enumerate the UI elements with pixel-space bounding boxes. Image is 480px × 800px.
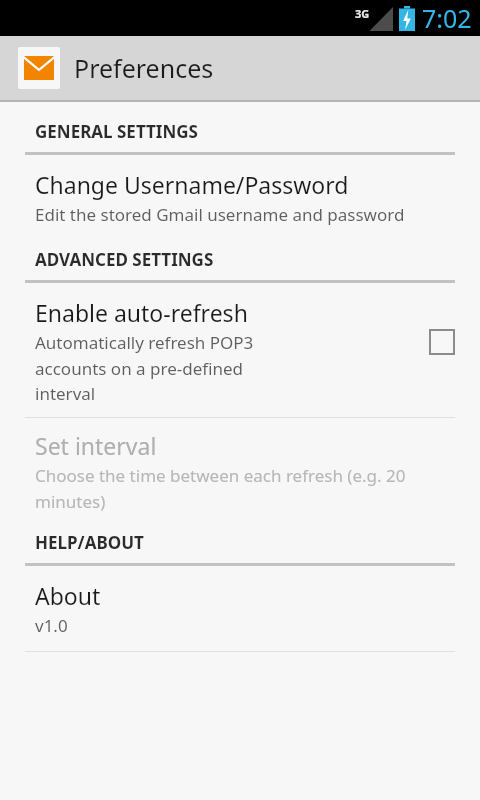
staticText: Change Username/Password [35,169,349,200]
button[interactable]: Set interval [0,418,480,525]
button[interactable]: Enable auto-refresh [0,283,480,417]
staticText: 3G [355,6,370,21]
staticText: ADVANCED SETTINGS [35,248,214,271]
button[interactable]: Preferences [0,36,480,100]
staticText: Preferences [74,51,214,85]
staticText: Set interval [35,430,157,461]
staticText: v1.0 [35,614,68,637]
button[interactable]: About [0,566,480,651]
button[interactable]: Change Username/Password [0,155,480,240]
staticText: About [35,580,101,611]
staticText: Choose the time between each refresh (e.… [35,464,455,513]
staticText: Edit the stored Gmail username and passw… [35,203,405,226]
staticText: Enable auto-refresh [35,297,248,328]
staticText: 7:02 [422,1,472,35]
button[interactable]: Enable auto-refresh [429,329,455,355]
staticText: Automatically refresh POP3 accounts on a… [35,331,304,405]
staticText: HELP/ABOUT [35,531,144,554]
staticText: GENERAL SETTINGS [35,120,198,143]
